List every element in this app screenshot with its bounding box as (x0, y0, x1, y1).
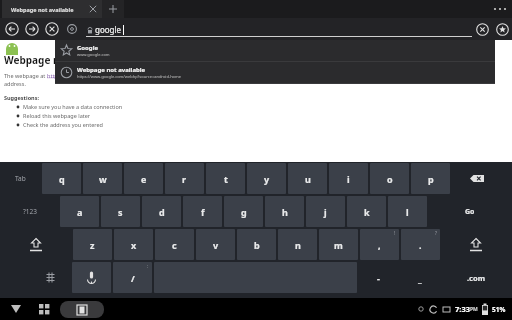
button[interactable]: Hide keyboard (6, 299, 26, 319)
button[interactable]: Page info (62, 19, 82, 39)
button[interactable]: g (224, 196, 263, 227)
button[interactable]: ?123 (1, 196, 58, 227)
staticText: ? (435, 230, 437, 236)
staticText: 51% (492, 305, 506, 314)
staticText: Webpage not available (11, 6, 74, 13)
staticText: ?123 (23, 207, 37, 216)
button[interactable]: b (237, 229, 276, 260)
staticText: p (428, 173, 434, 185)
staticText: The webpage at (4, 72, 47, 79)
button[interactable]: key (31, 262, 70, 293)
button[interactable]: k (347, 196, 386, 227)
button[interactable]: Go (429, 196, 511, 227)
staticText: x (131, 239, 137, 251)
button[interactable]: h (265, 196, 304, 227)
staticText: k (364, 206, 370, 218)
button[interactable]: , (360, 229, 399, 260)
button[interactable]: Close tab (84, 0, 102, 18)
button[interactable]: Home (34, 299, 54, 319)
button[interactable]: j (306, 196, 345, 227)
button[interactable]: l (388, 196, 427, 227)
button[interactable]: key (442, 229, 510, 260)
button[interactable]: Tab (1, 163, 40, 194)
staticText: h (282, 206, 288, 218)
button[interactable]: Stop (42, 19, 62, 39)
button[interactable]: w (83, 163, 122, 194)
button[interactable]: . (401, 229, 440, 260)
button[interactable]: key (1, 229, 71, 260)
button[interactable]: Back (2, 19, 22, 39)
button[interactable]: t (206, 163, 245, 194)
staticText: Make sure you have a data connection (23, 103, 123, 110)
staticText: ! (394, 230, 396, 236)
staticText: : (147, 263, 149, 269)
button[interactable]: f (183, 196, 222, 227)
staticText: Check the address you entered (23, 121, 103, 128)
staticText: q (59, 173, 65, 185)
button[interactable]: / (113, 262, 152, 293)
button[interactable]: m (319, 229, 358, 260)
button[interactable]: google (86, 21, 472, 37)
button[interactable]: Webpage not available (2, 0, 102, 18)
staticText: Go (465, 207, 475, 217)
button[interactable]: a (60, 196, 99, 227)
staticText: j (324, 206, 327, 218)
button[interactable]: u (288, 163, 327, 194)
staticText: w (99, 173, 107, 185)
staticText: r (182, 173, 187, 185)
button[interactable]: q (42, 163, 81, 194)
button[interactable]: e (124, 163, 163, 194)
button[interactable]: s (101, 196, 140, 227)
staticText: i (347, 173, 350, 185)
staticText: o (387, 173, 393, 185)
button[interactable]: Webpage not available (55, 62, 495, 83)
staticText: l (406, 206, 409, 218)
button[interactable]: - (359, 262, 398, 293)
button[interactable]: key (452, 163, 502, 194)
staticText: e (141, 173, 147, 185)
button[interactable]: x (114, 229, 153, 260)
staticText: .com (467, 273, 485, 283)
button[interactable]: n (278, 229, 317, 260)
button[interactable]: Clear (472, 19, 492, 39)
button[interactable]: o (370, 163, 409, 194)
staticText: m (334, 239, 343, 251)
button[interactable]: y (247, 163, 286, 194)
staticText: - (377, 272, 380, 284)
button[interactable]: c (155, 229, 194, 260)
staticText: Webpage not available (4, 53, 118, 67)
staticText: y (264, 173, 270, 185)
button[interactable]: Menu (492, 0, 506, 18)
staticText: , (378, 239, 381, 251)
button[interactable]: p (411, 163, 450, 194)
staticText: / (131, 272, 135, 284)
staticText: address. (4, 80, 26, 87)
button[interactable]: i (329, 163, 368, 194)
staticText: _ (418, 272, 422, 284)
staticText: Google (77, 44, 99, 52)
button[interactable]: r (165, 163, 204, 194)
staticText: v (213, 239, 219, 251)
button[interactable]: Recent apps (60, 301, 104, 318)
button[interactable]: New tab (102, 0, 124, 18)
button[interactable]: Bookmark (492, 19, 512, 39)
staticText: www.google.com (77, 52, 110, 57)
staticText: d (159, 206, 165, 218)
button[interactable]: Forward (22, 19, 42, 39)
staticText: t (224, 173, 228, 185)
staticText: Suggestions: (4, 94, 39, 101)
button[interactable]: Google (55, 40, 495, 61)
button[interactable]: z (73, 229, 112, 260)
button[interactable]: _ (400, 262, 439, 293)
button[interactable]: d (142, 196, 181, 227)
staticText: g (241, 206, 247, 218)
button[interactable]: .com (441, 262, 511, 293)
staticText: Tab (15, 174, 26, 183)
staticText: 7:33 (455, 304, 470, 314)
staticText: u (305, 173, 311, 185)
staticText: https://www.google.com/webhp?source=andr… (77, 74, 182, 79)
button[interactable]: key (72, 262, 111, 293)
button[interactable]: v (196, 229, 235, 260)
